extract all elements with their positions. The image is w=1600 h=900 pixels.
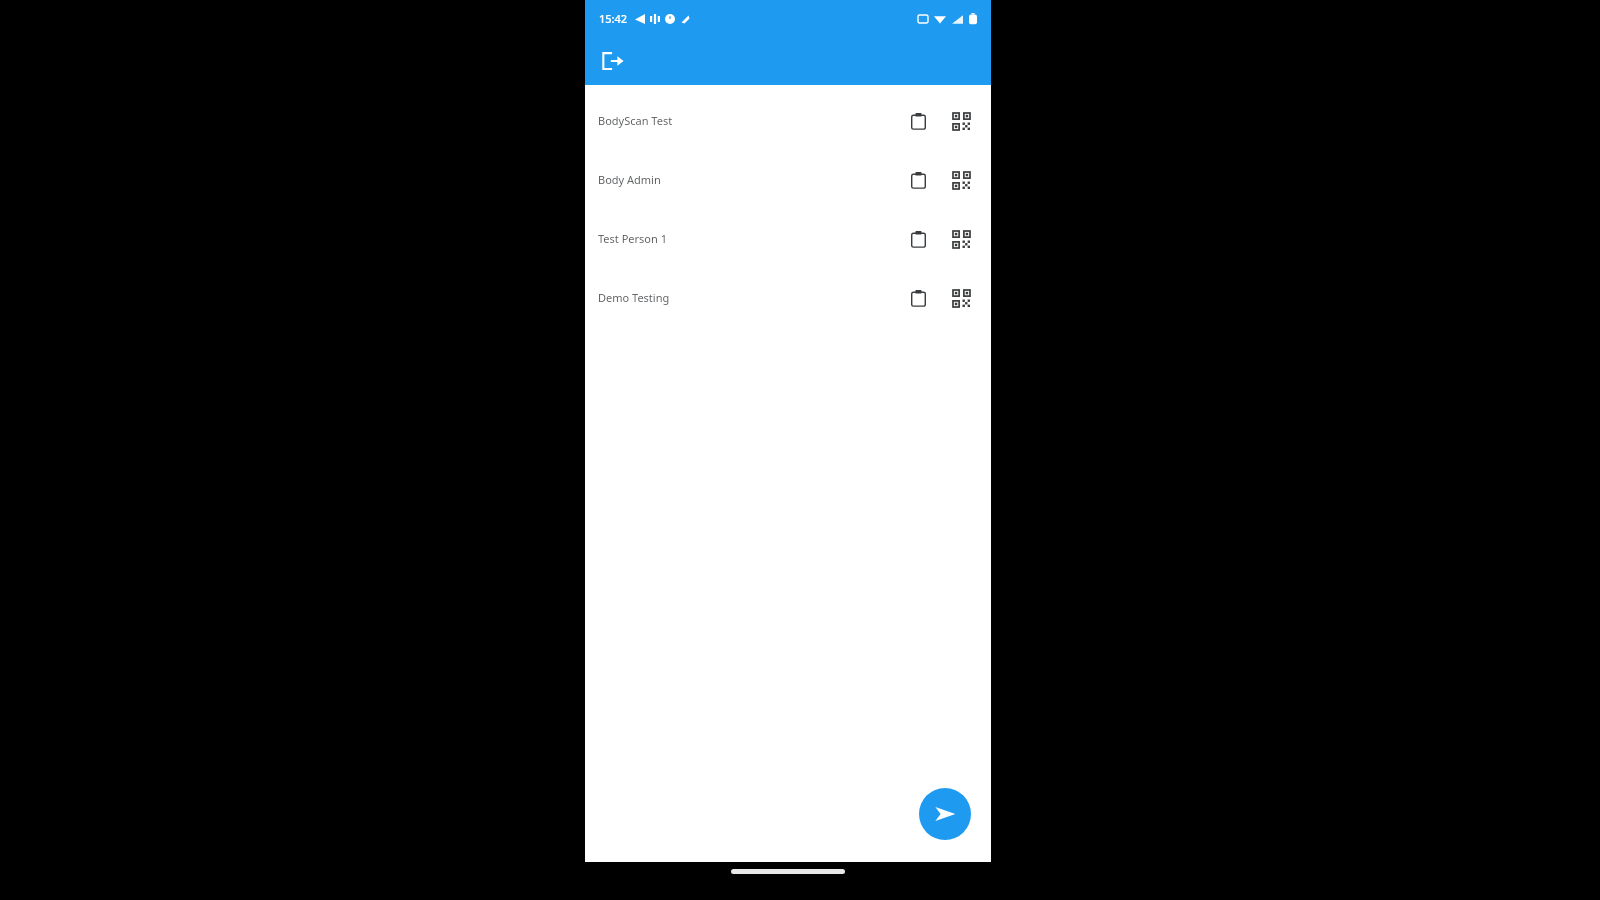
staticText: 15:42 <box>599 11 628 26</box>
staticText: Demo Testing <box>598 290 898 305</box>
button[interactable]: Show QR code <box>941 101 981 141</box>
button[interactable]: Show QR code <box>941 160 981 200</box>
button[interactable]: Logout <box>591 39 635 83</box>
button[interactable]: Send <box>919 788 971 840</box>
button[interactable]: Copy details <box>898 160 938 200</box>
button[interactable]: Body Admin <box>585 150 991 209</box>
button[interactable]: Copy details <box>898 278 938 318</box>
staticText: Body Admin <box>598 172 898 187</box>
button[interactable]: Show QR code <box>941 278 981 318</box>
button[interactable]: Test Person 1 <box>585 209 991 268</box>
button[interactable]: Show QR code <box>941 219 981 259</box>
button[interactable]: Copy details <box>898 219 938 259</box>
staticText: BodyScan Test <box>598 113 898 128</box>
button[interactable]: BodyScan Test <box>585 91 991 150</box>
button[interactable]: Demo Testing <box>585 268 991 327</box>
button[interactable]: Copy details <box>898 101 938 141</box>
staticText: Test Person 1 <box>598 231 898 246</box>
